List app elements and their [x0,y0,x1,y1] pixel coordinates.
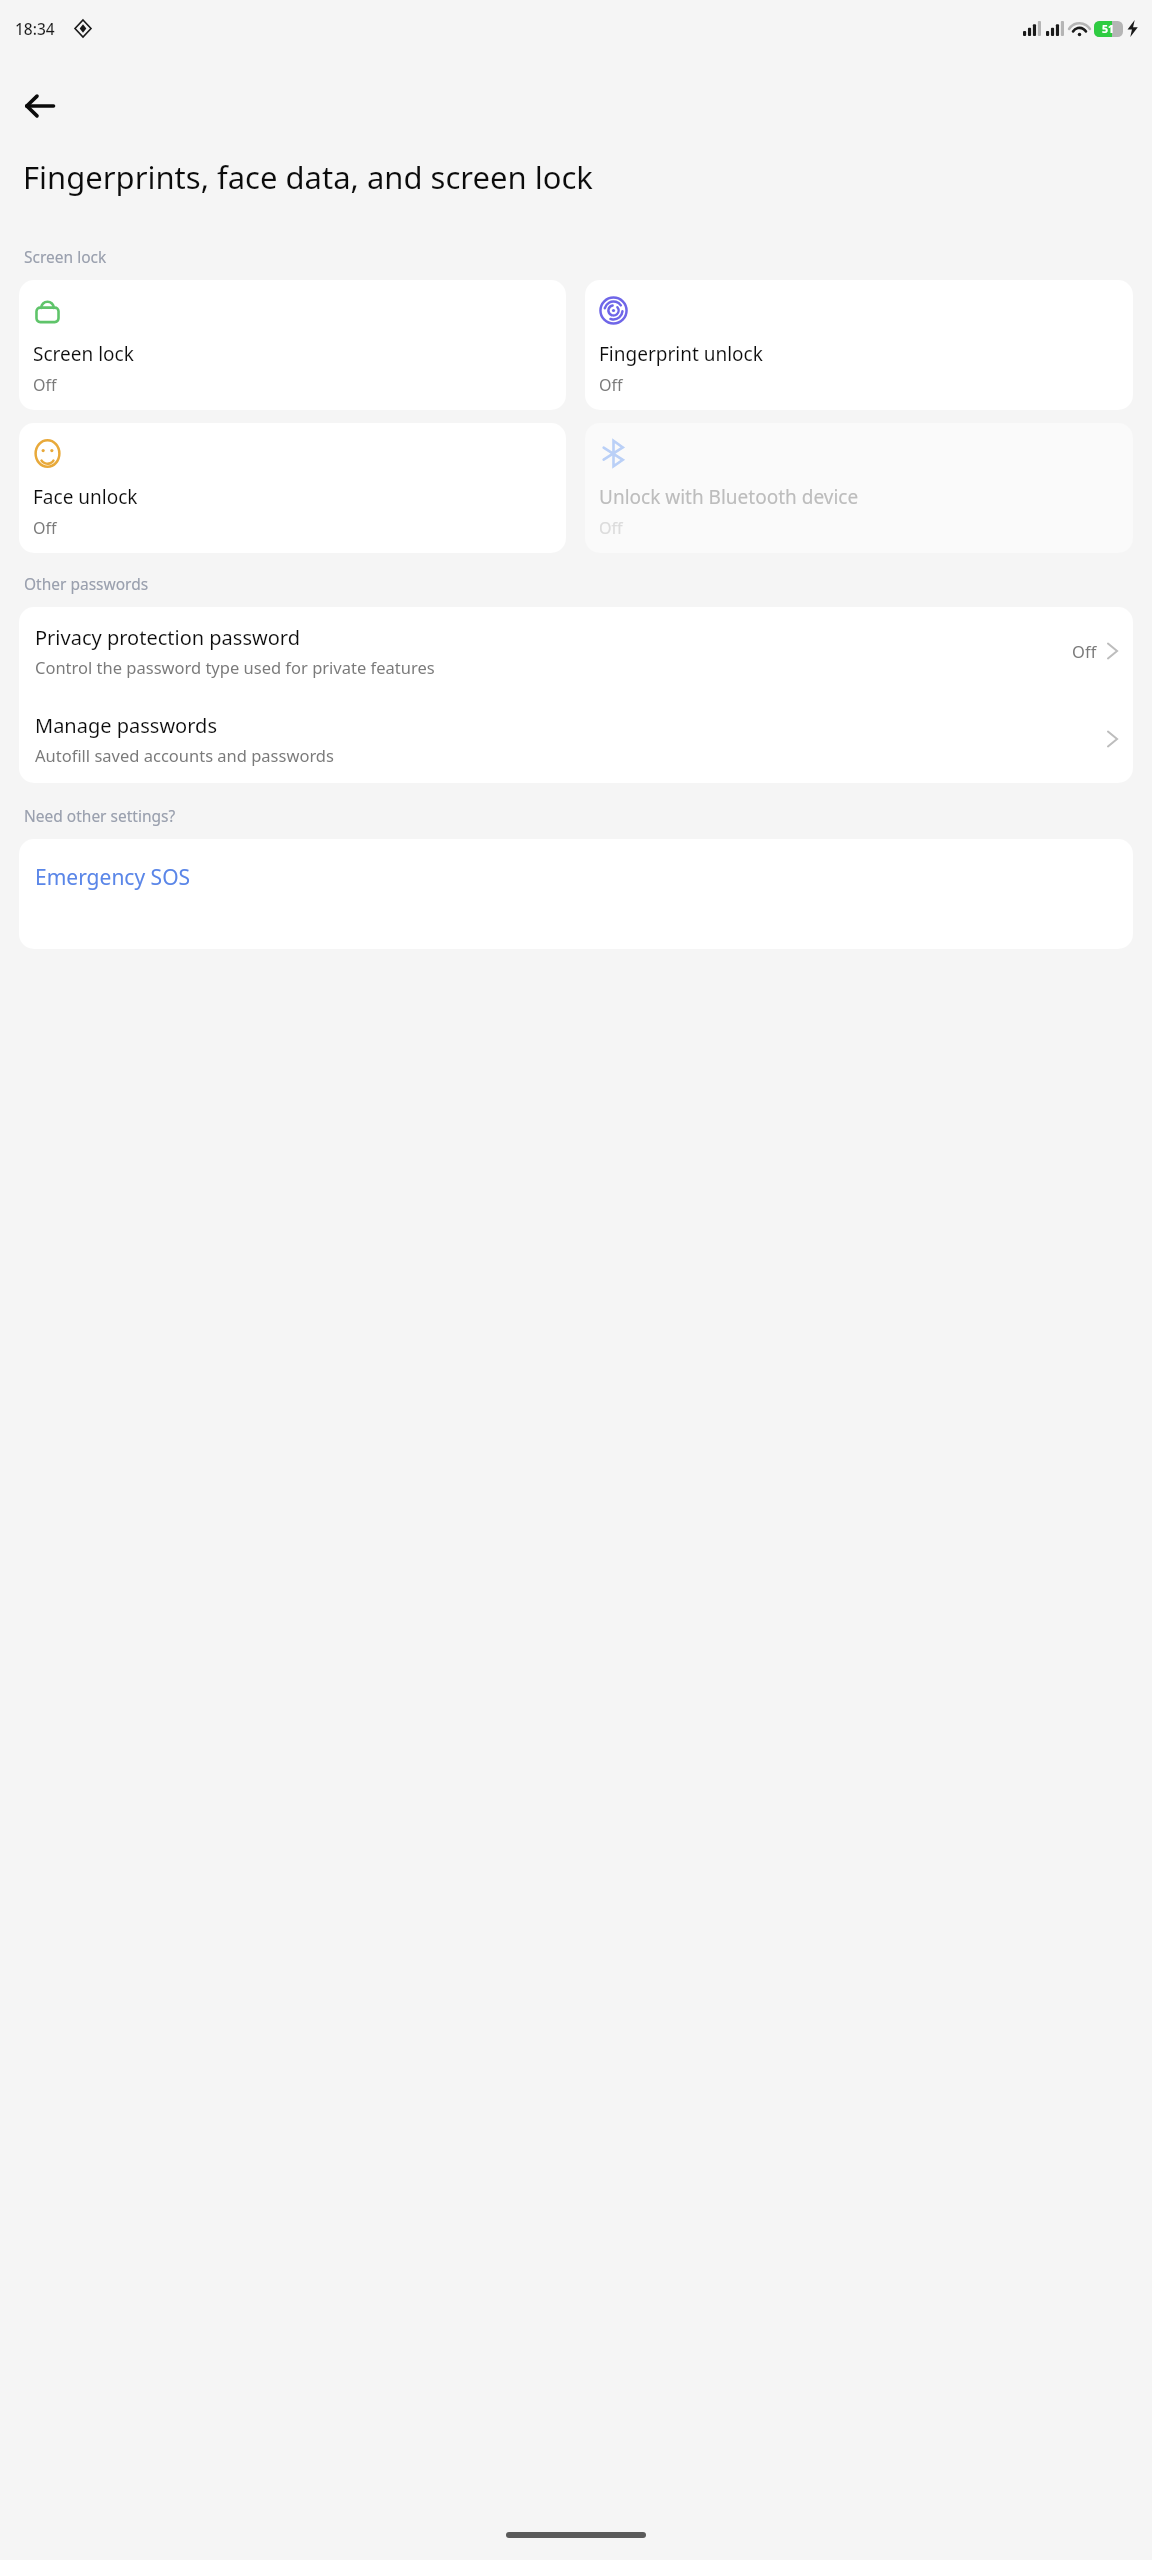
staticText: Unlock with Bluetooth device [599,484,859,510]
staticText: Screen lock [33,341,134,367]
button[interactable]: Manage passwords [19,695,1133,783]
staticText: Screen lock [24,246,107,267]
button[interactable]: Face unlock [19,423,566,553]
button[interactable]: Unlock with Bluetooth device [585,423,1133,553]
staticText: Fingerprints, face data, and screen lock [23,156,593,198]
staticText: Off [1072,640,1097,662]
button[interactable]: Screen lock [19,280,566,410]
staticText: Off [33,517,57,539]
button[interactable]: Privacy protection password [19,607,1133,695]
staticText: Manage passwords [35,712,217,739]
staticText: Face unlock [33,484,138,510]
staticText: Privacy protection password [35,624,300,651]
staticText: Other passwords [24,573,149,594]
staticText: Off [33,374,57,396]
staticText: Fingerprint unlock [599,341,763,367]
staticText: 18:34 [15,18,55,39]
button[interactable]: Back [12,78,68,134]
button[interactable]: Emergency SOS [19,839,1133,949]
staticText: Off [599,517,623,539]
button[interactable]: Fingerprint unlock [585,280,1133,410]
staticText: Autofill saved accounts and passwords [35,744,334,766]
staticText: Emergency SOS [35,863,191,892]
staticText: 51 [1102,22,1115,36]
staticText: Control the password type used for priva… [35,656,435,678]
staticText: Off [599,374,623,396]
staticText: Need other settings? [24,805,176,826]
